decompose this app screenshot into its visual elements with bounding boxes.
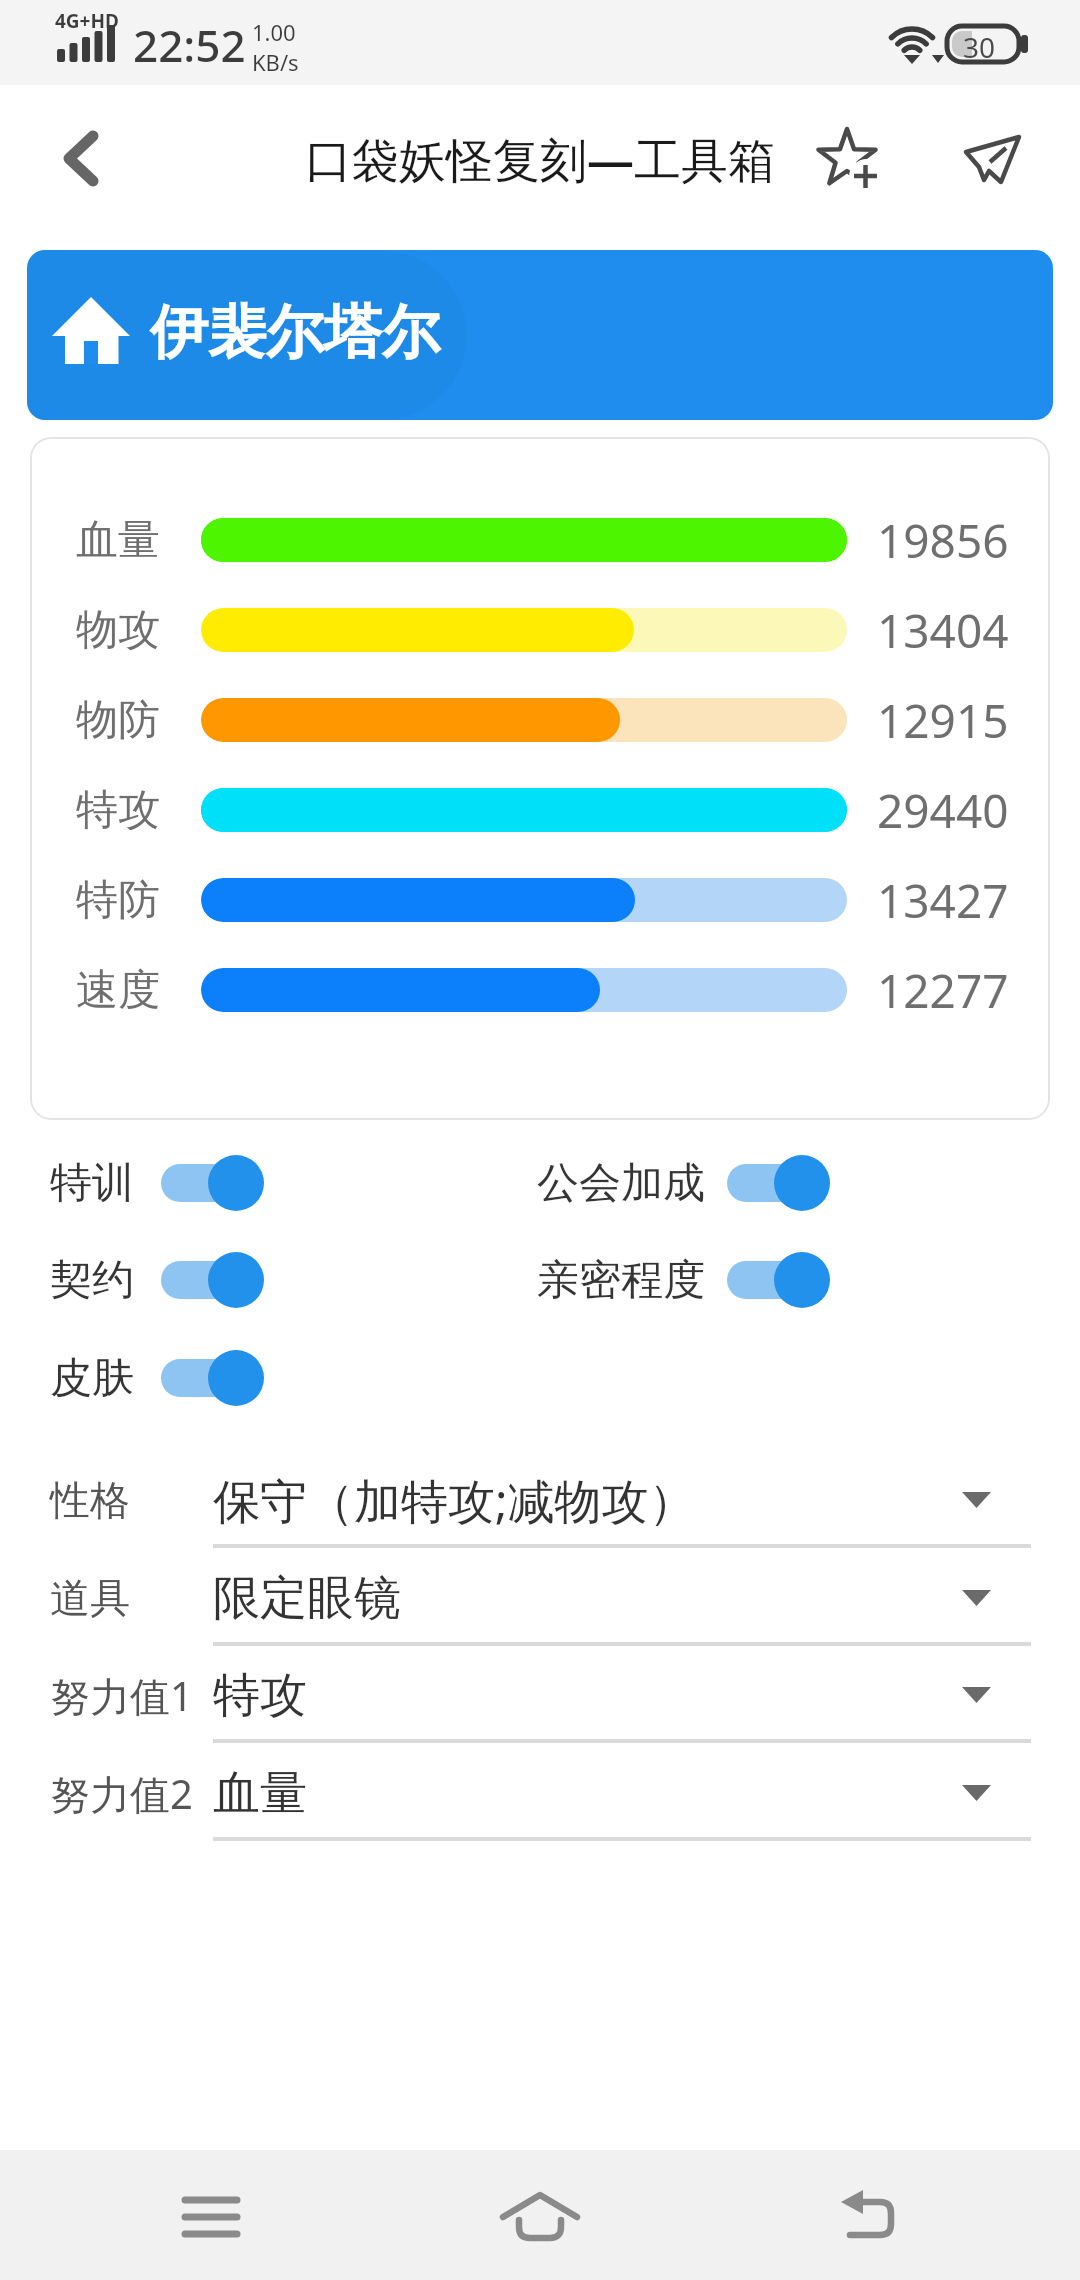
staticText: 13427 <box>877 869 1009 932</box>
staticText: 伊裴尔塔尔 <box>150 296 440 369</box>
staticText: 亲密程度 <box>537 1254 705 1307</box>
staticText: KB/s <box>252 47 299 77</box>
staticText: 道具 <box>50 1573 130 1623</box>
staticText: 物攻 <box>30 604 160 657</box>
staticText: 努力值1 <box>50 1668 193 1723</box>
staticText: 皮肤 <box>50 1352 134 1405</box>
staticText: 速度 <box>30 964 160 1017</box>
staticText: 血量 <box>213 1764 307 1823</box>
staticText: 12277 <box>877 959 1009 1022</box>
staticText: 特训 <box>50 1157 134 1210</box>
staticText: 1.00 <box>252 17 296 47</box>
staticText: 特防 <box>30 874 160 927</box>
staticText: 22:52 <box>133 15 246 75</box>
staticText: 物防 <box>30 694 160 747</box>
staticText: 12915 <box>877 689 1009 752</box>
staticText: 契约 <box>50 1254 134 1307</box>
staticText: 特攻 <box>30 784 160 837</box>
staticText: 19856 <box>877 509 1009 572</box>
staticText: 口袋妖怪复刻—工具箱 <box>305 127 775 191</box>
staticText: 29440 <box>877 779 1009 842</box>
staticText: 努力值2 <box>50 1766 193 1821</box>
staticText: 30 <box>963 28 996 66</box>
staticText: 保守（加特攻;减物攻） <box>213 1468 696 1532</box>
staticText: 13404 <box>877 599 1009 662</box>
staticText: 特攻 <box>213 1666 307 1725</box>
staticText: 血量 <box>30 514 160 567</box>
staticText: 性格 <box>50 1475 130 1525</box>
staticText: 4G+HD <box>55 8 119 34</box>
staticText: 公会加成 <box>537 1157 705 1210</box>
staticText: 限定眼镜 <box>213 1569 401 1628</box>
